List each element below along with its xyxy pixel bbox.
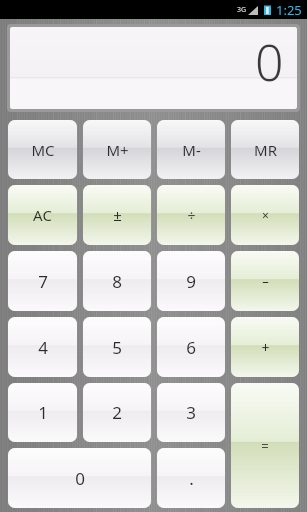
staticText: 9 (186, 270, 196, 293)
staticText: MR (254, 140, 277, 160)
button[interactable]: 0 (10, 27, 297, 109)
staticText: – (262, 272, 269, 290)
staticText: = (261, 437, 269, 455)
button[interactable]: 4 (8, 317, 77, 377)
staticText: MC (31, 140, 55, 160)
button[interactable]: 0 (8, 448, 151, 508)
staticText: 0 (75, 467, 85, 490)
staticText: AC (33, 205, 52, 225)
button[interactable]: 2 (83, 383, 151, 442)
staticText: ± (113, 205, 122, 225)
button[interactable]: 6 (157, 317, 225, 377)
button[interactable]: Minus (231, 251, 299, 311)
staticText: ÷ (187, 206, 196, 225)
staticText: 3 (186, 401, 196, 424)
staticText: + (261, 338, 270, 357)
staticText: × (262, 207, 269, 223)
button[interactable]: Equals (231, 383, 299, 508)
button[interactable]: AC (8, 185, 77, 245)
staticText: 1:25 (276, 1, 302, 19)
button[interactable]: 9 (157, 251, 225, 311)
button[interactable]: 7 (8, 251, 77, 311)
staticText: 8 (112, 270, 122, 293)
button[interactable]: M+ (83, 120, 151, 179)
button[interactable]: Plus (231, 317, 299, 377)
staticText: 1 (38, 401, 48, 424)
staticText: 2 (112, 401, 122, 424)
button[interactable]: 8 (83, 251, 151, 311)
button[interactable]: . (157, 448, 225, 508)
staticText: 3G (237, 5, 247, 15)
button[interactable]: 3 (157, 383, 225, 442)
staticText: M+ (106, 140, 129, 160)
staticText: 4 (38, 336, 48, 359)
staticText: M- (182, 140, 201, 160)
staticText: 6 (186, 336, 196, 359)
button[interactable]: MR (231, 120, 299, 179)
button[interactable]: Multiply (231, 185, 299, 245)
staticText: 5 (112, 336, 122, 359)
staticText: . (189, 467, 194, 490)
button[interactable]: Plus minus (83, 185, 151, 245)
button[interactable]: 1 (8, 383, 77, 442)
staticText: 0 (255, 28, 284, 96)
button[interactable]: Divide (157, 185, 225, 245)
button[interactable]: M- (157, 120, 225, 179)
button[interactable]: MC (8, 120, 77, 179)
button[interactable]: 5 (83, 317, 151, 377)
staticText: 7 (38, 270, 48, 293)
